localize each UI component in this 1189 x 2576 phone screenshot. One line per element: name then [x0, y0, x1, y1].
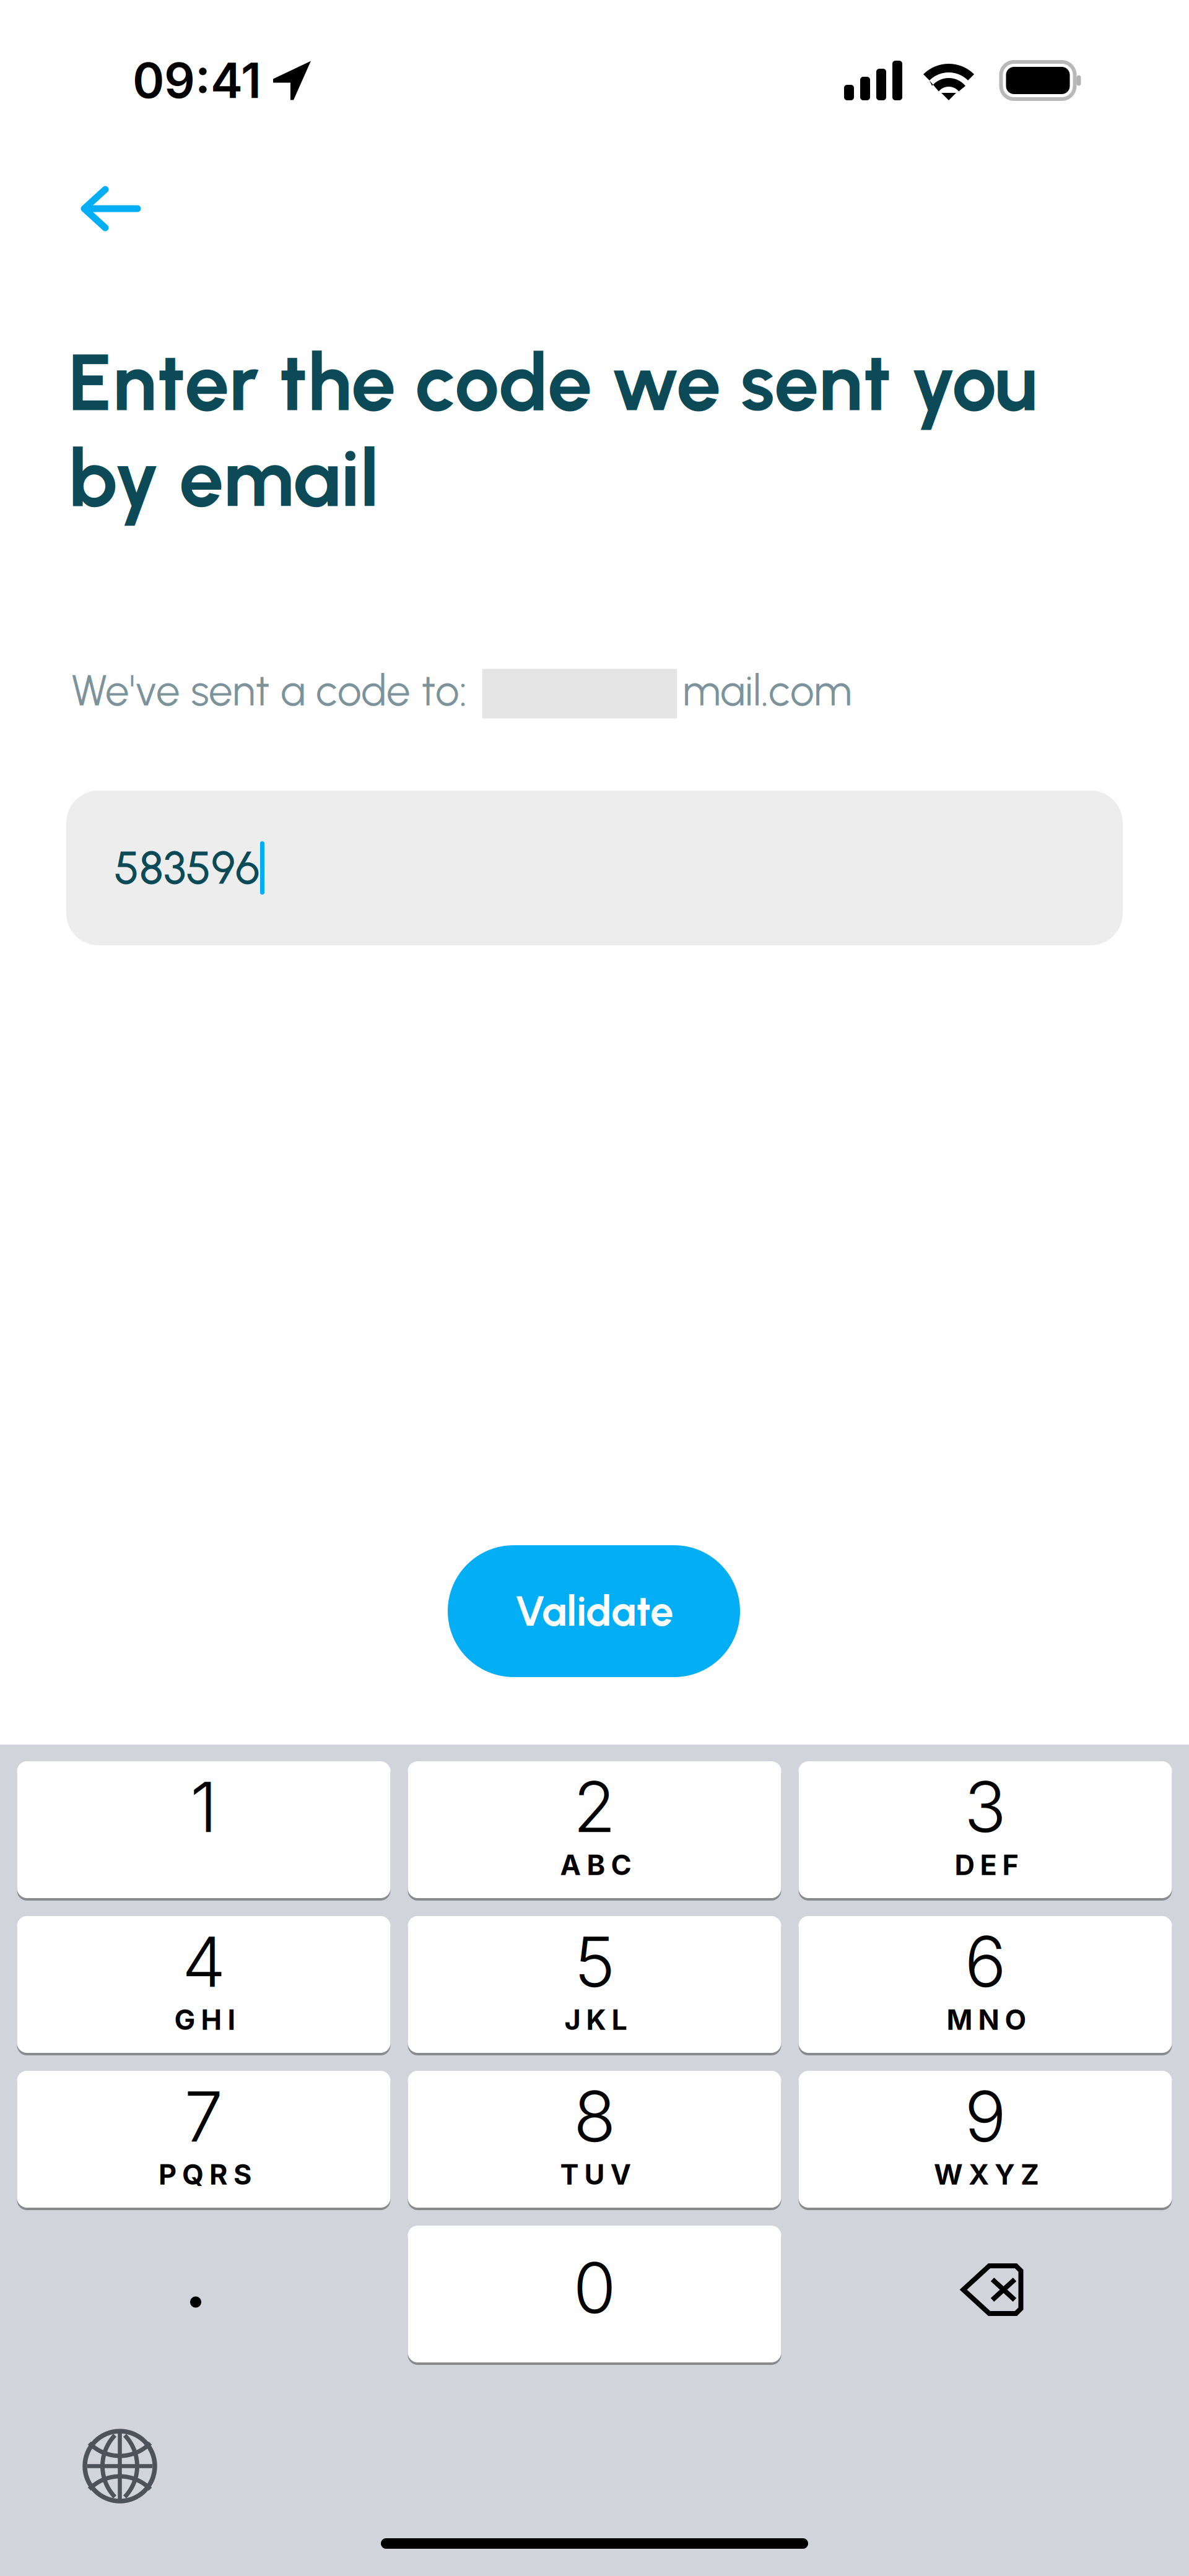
staticText: 583596: [114, 841, 260, 895]
staticText: 8: [573, 2074, 616, 2158]
button[interactable]: 5: [408, 1916, 781, 2053]
staticText: 4: [182, 1920, 225, 2003]
staticText: 7: [184, 2074, 223, 2158]
staticText: 3: [964, 1765, 1006, 1849]
staticText: Validate: [515, 1586, 673, 1636]
button[interactable]: 0: [408, 2226, 781, 2362]
staticText: JKL: [564, 2003, 627, 2037]
button[interactable]: Period: [17, 2226, 390, 2362]
button[interactable]: Back: [68, 174, 154, 243]
staticText: PQRS: [159, 2158, 251, 2191]
button[interactable]: Delete: [799, 2226, 1172, 2362]
button[interactable]: 3: [799, 1761, 1172, 1898]
staticText: 2: [573, 1765, 616, 1849]
button[interactable]: 6: [799, 1916, 1172, 2053]
button[interactable]: 8: [408, 2071, 781, 2208]
staticText: GHI: [174, 2003, 236, 2037]
staticText: ABC: [560, 1848, 631, 1882]
button[interactable]: 4: [17, 1916, 390, 2053]
staticText: 0: [573, 2246, 616, 2330]
button[interactable]: 1: [17, 1761, 390, 1898]
staticText: DEF: [955, 1848, 1018, 1882]
staticText: 09:41: [133, 51, 261, 110]
button[interactable]: 9: [799, 2071, 1172, 2208]
button[interactable]: Next keyboard: [85, 2431, 155, 2501]
staticText: We've sent a code to:: [71, 665, 488, 716]
staticText: 1: [190, 1765, 217, 1849]
staticText: MNO: [947, 2003, 1026, 2037]
button[interactable]: Validate: [448, 1545, 740, 1677]
button[interactable]: 7: [17, 2071, 390, 2208]
button[interactable]: 2: [408, 1761, 781, 1898]
staticText: 6: [965, 1920, 1006, 2003]
staticText: 9: [965, 2074, 1006, 2158]
staticText: 5: [574, 1920, 615, 2003]
staticText: Enter the code we sent you by email: [68, 334, 1037, 526]
staticText: TUV: [560, 2158, 631, 2191]
staticText: mail.com: [682, 665, 851, 716]
staticText: WXYZ: [934, 2158, 1039, 2191]
